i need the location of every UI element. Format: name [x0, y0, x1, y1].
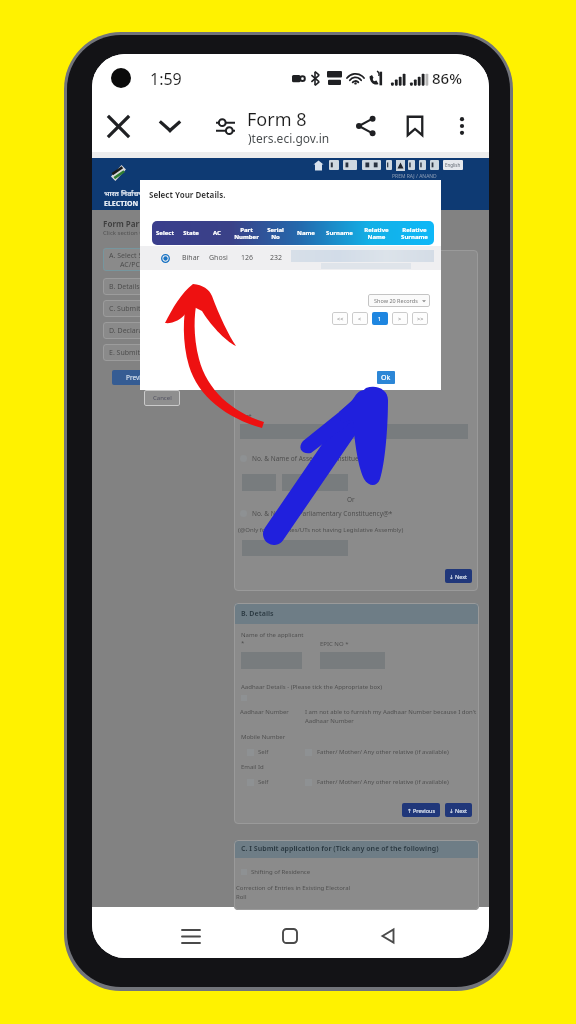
staticText: Form Particulars	[103, 218, 170, 229]
staticText: Preview	[126, 373, 150, 382]
staticText: C. I Submit application for (Tick any on…	[241, 844, 439, 854]
button[interactable]: B. Details	[103, 278, 215, 295]
staticText: >	[398, 315, 402, 322]
staticText: <<	[337, 315, 344, 322]
staticText: D. Declaration	[109, 326, 156, 336]
button[interactable]: Home	[313, 160, 324, 171]
staticText: ...ct	[240, 412, 252, 422]
staticText: Shifting of Residence	[251, 868, 311, 876]
staticText: Aadhaar Details - (Please tick the Appro…	[241, 683, 382, 691]
staticText: *	[241, 639, 245, 647]
staticText: Father/ Mother/ Any other relative (if a…	[317, 778, 449, 786]
button[interactable]: Preview	[112, 370, 164, 385]
button[interactable]: Home	[268, 914, 312, 958]
button[interactable]: A. Select State & AC/PC	[103, 248, 215, 271]
button[interactable]: 1	[372, 312, 388, 325]
button[interactable]: Page settings	[206, 107, 244, 145]
staticText: <	[358, 315, 362, 322]
staticText: B. Details	[109, 282, 140, 292]
staticText: English	[445, 162, 461, 168]
button[interactable]: ↑ Previous	[402, 803, 440, 817]
button[interactable]: Language English	[443, 160, 463, 170]
staticText: 232	[270, 253, 283, 263]
staticText: Relative Name	[364, 226, 389, 241]
button[interactable]: Share	[346, 106, 386, 146]
button[interactable]: D. Declaration	[103, 322, 215, 339]
staticText: 1	[378, 315, 382, 322]
staticText: AC	[213, 229, 221, 237]
button[interactable]: Downloads	[150, 106, 190, 146]
button[interactable]: Text size option	[430, 160, 439, 170]
button[interactable]: Select record	[160, 253, 171, 264]
button[interactable]: E. Submit	[103, 344, 215, 361]
staticText: )ters.eci.gov.in	[248, 130, 330, 146]
staticText: (@Only for the States/UTs not having Leg…	[238, 526, 404, 534]
staticText: ↑ Previous	[407, 807, 436, 814]
staticText: Show 20 Records	[374, 297, 418, 304]
staticText: C. Submit	[109, 304, 141, 314]
button[interactable]: Text size option	[343, 160, 357, 170]
button[interactable]: >	[392, 312, 408, 325]
staticText: Part Number	[234, 226, 259, 241]
staticText: >>	[417, 315, 424, 322]
staticText: I am not able to furnish my Aadhaar Numb…	[305, 708, 479, 725]
staticText: भारत निर्वाचन	[104, 189, 143, 199]
button[interactable]: More options	[445, 109, 479, 143]
staticText: Surname	[326, 229, 353, 237]
staticText: PREM RAJ / ANAND	[392, 173, 437, 180]
staticText: No. & Name of Assembly Constituency*	[252, 454, 373, 463]
staticText: EPIC NO *	[320, 640, 349, 648]
staticText: ↓ Next	[449, 807, 468, 814]
button[interactable]: Text size option	[362, 160, 381, 170]
staticText: ELECTION COMMISSION	[104, 199, 188, 209]
staticText: E. Submit	[109, 348, 140, 358]
staticText: Or	[347, 495, 355, 504]
staticText: Relative Surname	[401, 226, 428, 241]
button[interactable]: ↓ Next	[445, 803, 472, 817]
staticText: Bihar	[182, 253, 200, 263]
button[interactable]: Close	[98, 106, 138, 146]
button[interactable]: Ok	[377, 371, 395, 384]
staticText: A. Select State & AC/PC	[109, 251, 163, 269]
button[interactable]: C. Submit	[103, 300, 215, 317]
staticText: Select Your Details.	[149, 189, 226, 200]
staticText: Name of the applicant	[241, 631, 304, 639]
button[interactable]: Bookmark	[395, 106, 435, 146]
staticText: Form 8	[247, 107, 307, 132]
staticText: 1:59	[150, 68, 182, 90]
button[interactable]: Show 20 Records	[368, 294, 430, 307]
staticText: Mobile Number	[241, 733, 286, 741]
staticText: Email Id	[241, 763, 264, 771]
staticText: Name	[297, 229, 315, 237]
staticText: Father/ Mother/ Any other relative (if a…	[317, 748, 449, 756]
staticText: Ok	[381, 373, 391, 383]
button[interactable]: Recent apps	[169, 914, 213, 958]
staticText: Serial No	[267, 226, 284, 241]
staticText: State	[183, 229, 199, 237]
staticText: ↓ Next	[449, 573, 468, 580]
staticText: No. & Name of Parliamentary Constituency…	[252, 509, 393, 518]
staticText: Ghosi	[209, 253, 228, 263]
button[interactable]: Text size option	[386, 160, 392, 170]
button[interactable]: <	[352, 312, 368, 325]
staticText: Cancel	[153, 394, 172, 402]
staticText: Click section to navigate	[103, 229, 171, 237]
button[interactable]: Text size option	[329, 160, 339, 170]
staticText: Correction of Entries in Existing Electo…	[236, 884, 351, 901]
button[interactable]: Back	[366, 914, 410, 958]
staticText: Aadhaar Number	[240, 708, 289, 716]
button[interactable]: Text size option	[408, 160, 415, 170]
button[interactable]: Contrast	[396, 160, 405, 171]
staticText: 126	[241, 253, 254, 263]
staticText: Self	[258, 778, 269, 786]
button[interactable]: Cancel	[144, 390, 180, 406]
staticText: Self	[258, 748, 269, 756]
staticText: B. Details	[241, 609, 274, 619]
button[interactable]: <<	[332, 312, 348, 325]
staticText: 86%	[432, 68, 462, 88]
staticText: Select	[156, 229, 174, 237]
button[interactable]: >>	[412, 312, 428, 325]
button[interactable]: Text size option	[419, 160, 426, 170]
button[interactable]: ↓ Next	[445, 569, 472, 583]
